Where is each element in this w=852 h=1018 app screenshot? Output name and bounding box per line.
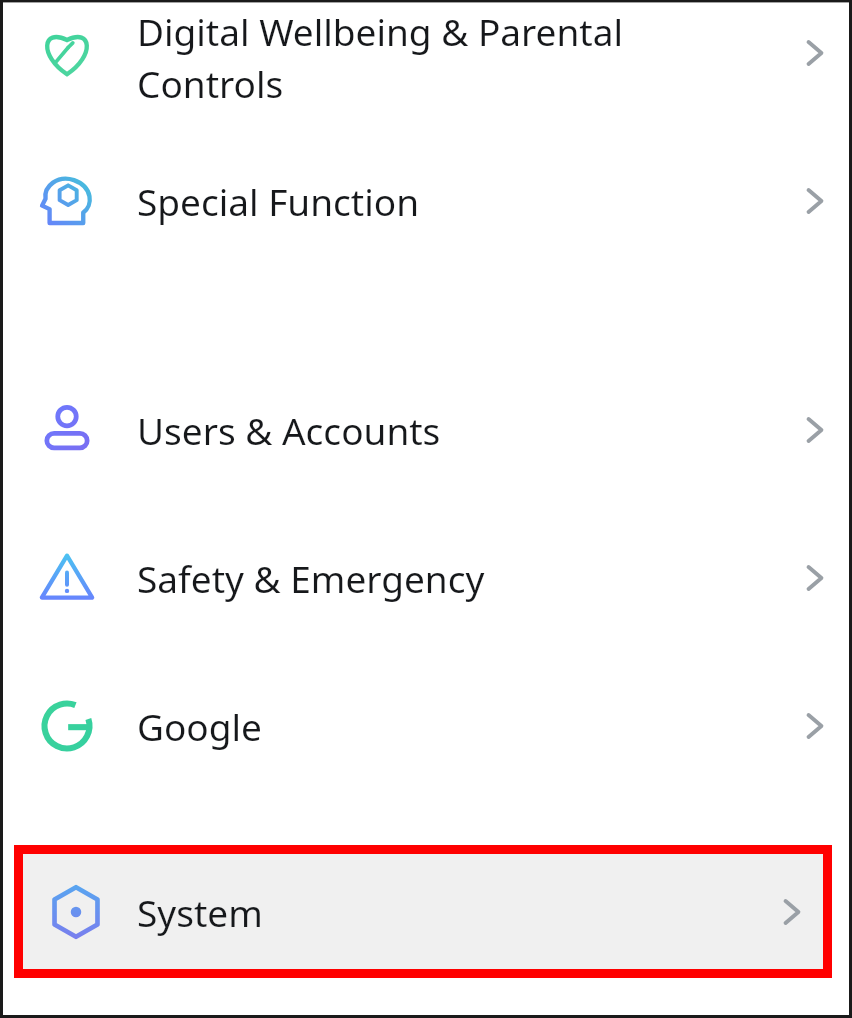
staticText: Digital Wellbeing & Parental Controls xyxy=(137,6,762,109)
staticText: Users & Accounts xyxy=(137,405,754,455)
staticText: Special Function xyxy=(137,176,754,226)
button[interactable]: Google xyxy=(0,652,852,800)
button[interactable]: Safety & Emergency xyxy=(0,504,852,652)
button[interactable]: Special Function xyxy=(0,148,852,254)
staticText: Safety & Emergency xyxy=(137,553,754,603)
staticText: System xyxy=(137,887,752,937)
button[interactable]: System xyxy=(14,845,832,978)
staticText: Google xyxy=(137,701,754,751)
button[interactable]: Digital Wellbeing & Parental Controls xyxy=(0,0,852,148)
button[interactable]: Users & Accounts xyxy=(0,356,852,504)
